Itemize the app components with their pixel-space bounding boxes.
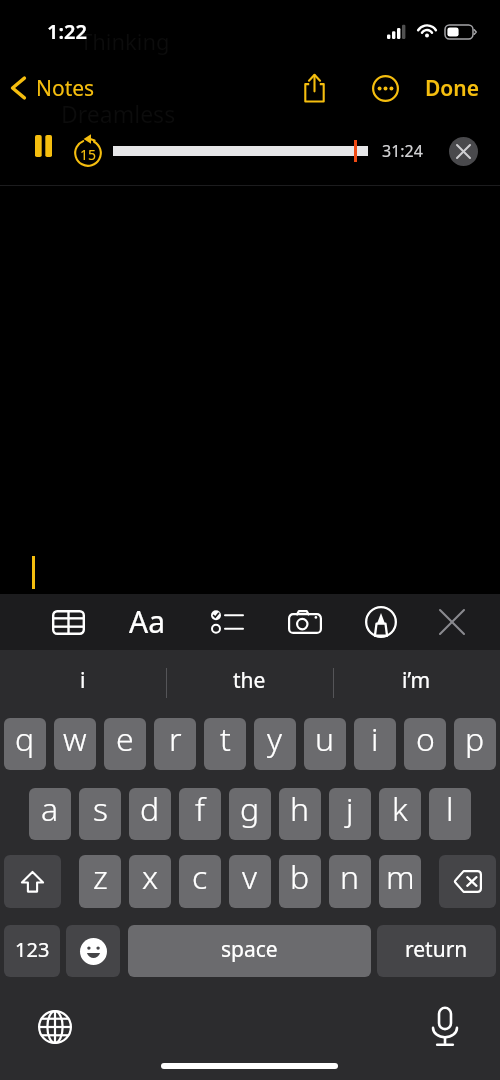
staticText: Dreamless [61,98,176,129]
button[interactable]: Shift [4,855,61,908]
staticText: l [446,788,454,831]
button[interactable]: j [329,788,371,840]
button[interactable]: Share [292,66,336,110]
button[interactable]: b [279,855,321,908]
button[interactable]: space [128,925,371,977]
button[interactable]: Next keyboard [33,1005,77,1049]
staticText: space [221,935,278,964]
button[interactable]: Checklist [202,598,250,646]
staticText: the [233,666,266,695]
button[interactable]: Insert table [44,598,92,646]
button[interactable]: 123 [4,925,60,977]
staticText: Done [425,74,480,103]
staticText: v [242,855,258,899]
staticText: i [80,666,86,695]
staticText: p [465,718,485,761]
staticText: m [386,855,415,899]
button[interactable]: Markup [357,598,405,646]
button[interactable]: g [229,788,271,840]
staticText: g [240,788,260,831]
button[interactable]: z [79,855,121,908]
staticText: h [290,788,310,831]
button[interactable]: p [454,718,496,770]
staticText: f [195,788,205,831]
staticText: n [340,855,360,899]
button[interactable]: Camera [281,598,329,646]
staticText: r [169,718,182,761]
button[interactable]: q [4,718,46,770]
button[interactable]: i [354,718,396,770]
staticText: Notes [36,74,95,103]
button[interactable]: u [304,718,346,770]
button[interactable]: Done [418,66,486,110]
button[interactable]: c [179,855,221,908]
button[interactable]: y [254,718,296,770]
staticText: t [220,718,231,761]
button[interactable]: h [279,788,321,840]
button[interactable]: i’m [333,650,500,708]
staticText: o [416,718,435,761]
button[interactable]: a [29,788,71,840]
button[interactable]: More options [363,66,407,110]
staticText: b [290,855,310,899]
staticText: i’m [402,666,431,695]
button[interactable]: Hide keyboard [428,598,476,646]
staticText: e [116,718,134,761]
staticText: Thinking [80,26,170,56]
button[interactable]: l [429,788,471,840]
staticText: 31:24 [382,140,423,162]
button[interactable]: w [54,718,96,770]
staticText: x [142,855,159,899]
button[interactable]: s [79,788,121,840]
button[interactable]: Pause [26,129,60,163]
staticText: w [63,718,87,761]
staticText: i [371,718,379,761]
staticText: 123 [15,936,50,963]
staticText: d [140,788,160,831]
staticText: q [15,718,35,761]
button[interactable]: m [379,855,421,908]
button[interactable]: Emoji [66,925,120,977]
staticText: s [93,788,108,831]
staticText: y [267,718,283,761]
button[interactable]: i [0,650,166,708]
staticText: 1:22 [47,18,87,45]
staticText: 15 [80,145,97,164]
staticText: k [392,788,408,831]
button[interactable]: n [329,855,371,908]
button[interactable]: r [154,718,196,770]
staticText: Aa [129,601,165,642]
button[interactable]: k [379,788,421,840]
button[interactable]: Delete [439,855,496,908]
button[interactable]: return [377,925,496,977]
button[interactable]: Notes [0,66,105,110]
button[interactable]: Aa [123,598,171,646]
button[interactable]: Close player [449,137,478,166]
staticText: c [192,855,208,899]
button[interactable]: x [129,855,171,908]
staticText: return [405,935,468,964]
button[interactable]: Dictate [423,1005,467,1049]
staticText: u [315,718,335,761]
staticText: a [41,788,59,831]
button[interactable]: v [229,855,271,908]
button[interactable]: d [129,788,171,840]
button[interactable]: e [104,718,146,770]
button[interactable]: f [179,788,221,840]
button[interactable]: t [204,718,246,770]
button[interactable]: o [404,718,446,770]
button[interactable]: the [166,650,333,708]
button[interactable]: Rewind 15 seconds [68,133,108,173]
staticText: j [346,788,354,831]
staticText: z [93,855,108,899]
